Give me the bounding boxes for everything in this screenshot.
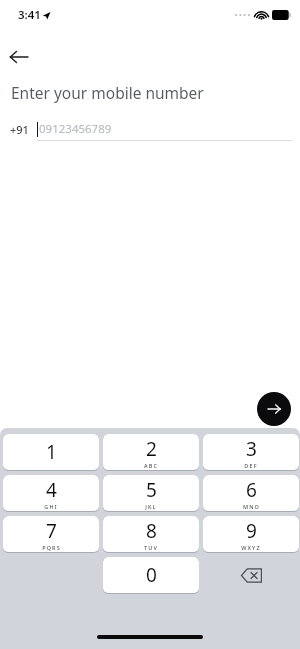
staticText: 9: [246, 518, 257, 544]
staticText: 3: [246, 436, 257, 462]
button[interactable]: Continue: [257, 392, 291, 426]
staticText: GHI: [44, 503, 58, 510]
staticText: 0: [146, 562, 157, 588]
staticText: PQRS: [42, 544, 61, 551]
button[interactable]: 3: [203, 434, 299, 471]
staticText: 4: [46, 477, 57, 503]
staticText: 3:41: [18, 7, 41, 23]
staticText: TUV: [144, 544, 158, 551]
button[interactable]: 7: [3, 516, 99, 553]
button[interactable]: Back: [6, 44, 32, 70]
staticText: WXYZ: [241, 544, 261, 551]
staticText: 09123456789: [39, 121, 112, 137]
staticText: ABC: [144, 462, 158, 469]
staticText: 2: [146, 436, 157, 462]
staticText: Enter your mobile number: [11, 82, 204, 103]
button[interactable]: 0: [103, 557, 199, 594]
staticText: 7: [46, 518, 57, 544]
button[interactable]: 4: [3, 475, 99, 512]
button[interactable]: Delete: [203, 557, 299, 594]
staticText: +91: [10, 122, 29, 137]
staticText: MNO: [243, 503, 260, 510]
button[interactable]: 6: [203, 475, 299, 512]
button[interactable]: 9: [203, 516, 299, 553]
button[interactable]: 8: [103, 516, 199, 553]
button[interactable]: 1: [3, 434, 99, 471]
button[interactable]: 2: [103, 434, 199, 471]
button[interactable]: 5: [103, 475, 199, 512]
staticText: DEF: [244, 462, 258, 469]
staticText: 1: [46, 439, 57, 465]
staticText: JKL: [145, 503, 157, 510]
staticText: 6: [246, 477, 257, 503]
staticText: 8: [146, 518, 157, 544]
staticText: 5: [146, 477, 157, 503]
